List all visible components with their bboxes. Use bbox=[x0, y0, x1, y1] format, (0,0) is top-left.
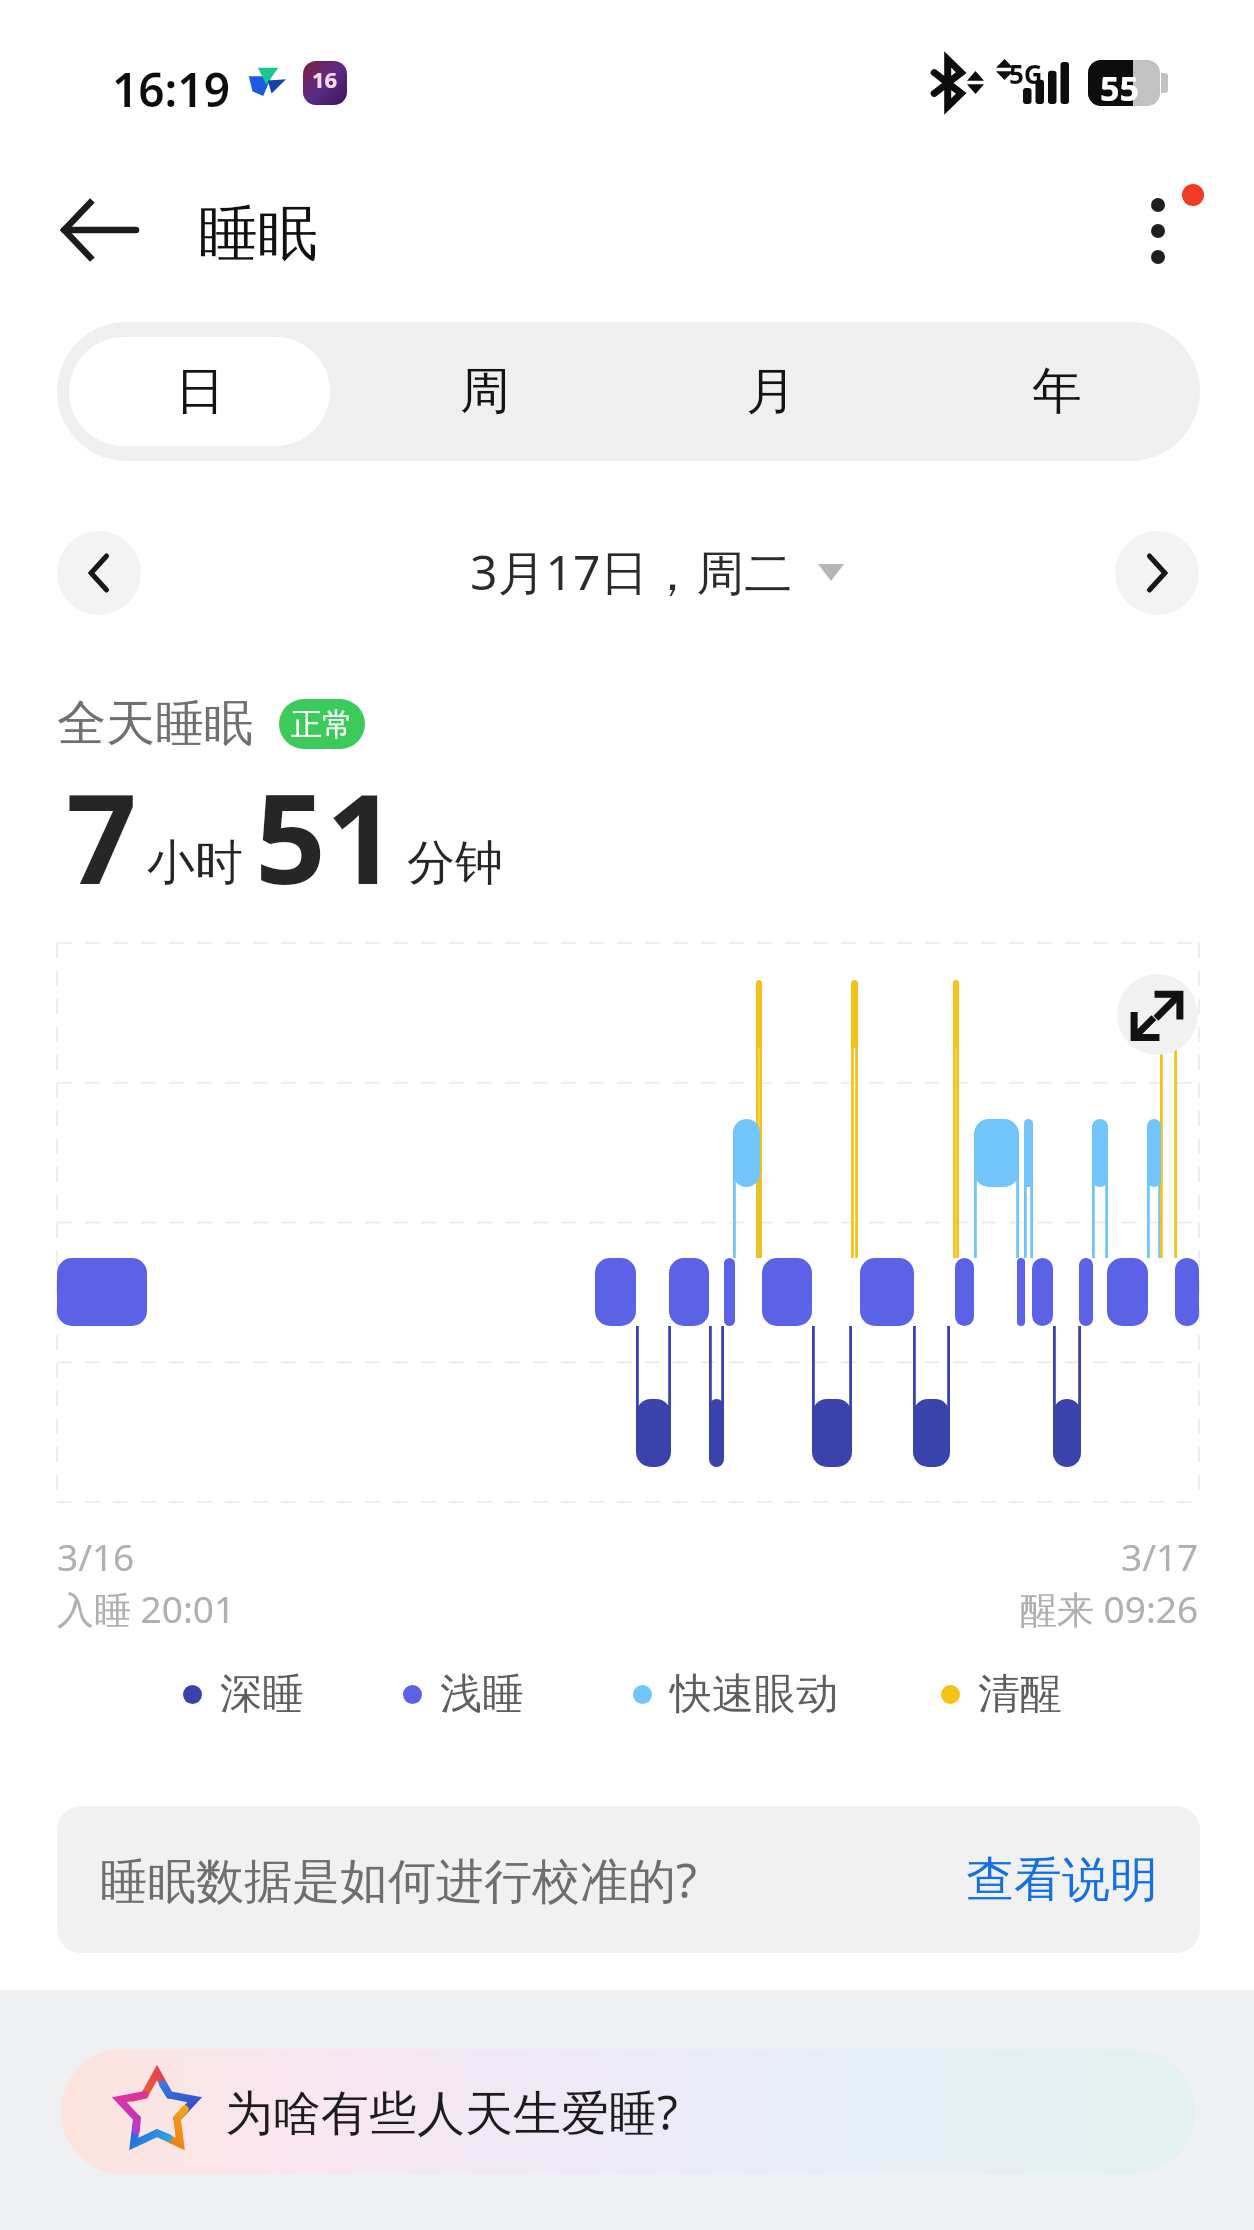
button[interactable]: 睡眠数据是如何进行校准的? bbox=[57, 1806, 1200, 1953]
button[interactable]: 浅睡 bbox=[403, 1668, 524, 1721]
staticText: 深睡 bbox=[220, 1668, 304, 1721]
button[interactable]: 3月17日，周二 bbox=[470, 539, 844, 605]
staticText: 分钟 bbox=[407, 833, 503, 893]
staticText: 3月17日，周二 bbox=[470, 539, 793, 605]
staticText: 日 bbox=[175, 360, 225, 423]
staticText: 睡眠 bbox=[198, 196, 318, 272]
staticText: 浅睡 bbox=[440, 1668, 524, 1721]
staticText: 醒来 09:26 bbox=[1020, 1583, 1199, 1634]
staticText: 55 bbox=[1100, 65, 1139, 111]
staticText: 16 bbox=[312, 64, 338, 94]
staticText: 为啥有些人天生爱睡? bbox=[225, 2079, 678, 2145]
button[interactable]: 月 bbox=[640, 337, 902, 446]
staticText: 小时 bbox=[147, 833, 243, 893]
button[interactable]: Previous day bbox=[57, 531, 141, 615]
staticText: 查看说明 bbox=[966, 1850, 1158, 1910]
staticText: 年 bbox=[1032, 360, 1082, 423]
staticText: 3/16 bbox=[57, 1531, 135, 1581]
staticText: 正常 bbox=[291, 705, 353, 744]
button[interactable]: 清醒 bbox=[941, 1668, 1062, 1721]
staticText: 51 bbox=[255, 751, 397, 920]
button[interactable]: 日 bbox=[69, 337, 330, 446]
button[interactable]: Expand chart bbox=[1117, 974, 1198, 1055]
staticText: 清醒 bbox=[978, 1668, 1062, 1721]
button[interactable]: More options bbox=[1105, 178, 1215, 288]
button[interactable]: 年 bbox=[926, 337, 1188, 446]
button[interactable]: 为啥有些人天生爱睡? bbox=[61, 2049, 1195, 2174]
staticText: 入睡 20:01 bbox=[57, 1583, 236, 1634]
staticText: 16:19 bbox=[112, 58, 230, 121]
staticText: 3/17 bbox=[1121, 1531, 1199, 1581]
staticText: 7 bbox=[66, 751, 137, 920]
staticText: 睡眠数据是如何进行校准的? bbox=[100, 1847, 697, 1913]
staticText: 全天睡眠 bbox=[57, 693, 253, 755]
button[interactable]: 快速眼动 bbox=[633, 1668, 838, 1721]
button[interactable]: Back bbox=[41, 172, 157, 288]
staticText: 周 bbox=[460, 360, 510, 423]
staticText: 快速眼动 bbox=[670, 1668, 838, 1721]
staticText: 月 bbox=[746, 360, 796, 423]
button[interactable]: 深睡 bbox=[183, 1668, 304, 1721]
button[interactable]: 周 bbox=[354, 337, 616, 446]
staticText: 5G bbox=[1009, 56, 1043, 91]
button[interactable]: Next day bbox=[1115, 531, 1199, 615]
